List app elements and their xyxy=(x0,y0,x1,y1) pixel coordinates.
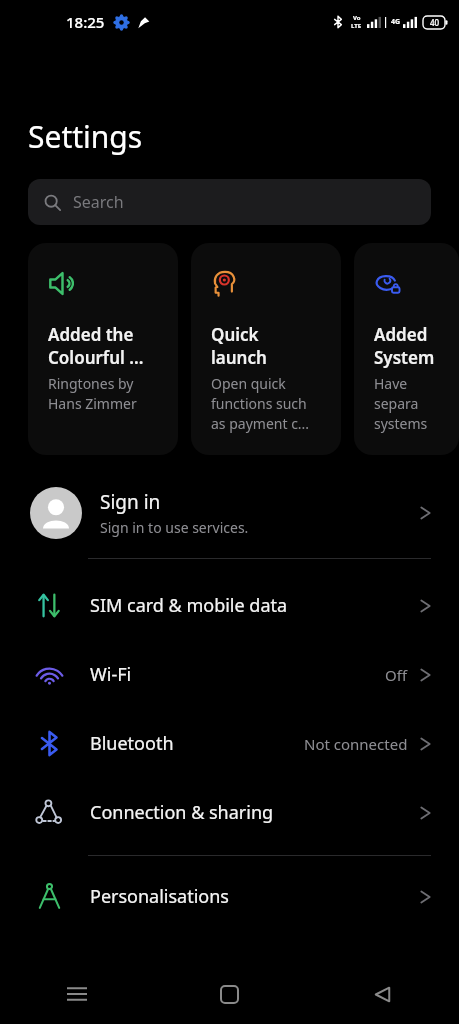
staticText: Personalisations xyxy=(90,884,420,909)
staticText: SIM card & mobile data xyxy=(90,593,420,618)
staticText: Search xyxy=(73,191,124,213)
staticText: Ringtones by Hans Zimmer xyxy=(48,374,137,413)
staticText: Vo xyxy=(353,14,361,22)
staticText: Sign in xyxy=(100,489,161,515)
button[interactable]: Personalisations xyxy=(0,862,459,931)
staticText: 4G xyxy=(391,17,401,27)
staticText: Wi-Fi xyxy=(90,662,385,687)
staticText: Have separa systems for work and pe xyxy=(374,374,449,433)
button[interactable]: Added the Colourful ... xyxy=(28,243,178,455)
staticText: Connection & sharing xyxy=(90,800,420,825)
staticText: Added System clo xyxy=(374,323,449,369)
button[interactable]: Quick launch xyxy=(191,243,341,455)
staticText: Added the Colourful ... xyxy=(48,323,144,369)
staticText: LTE xyxy=(351,22,362,30)
button[interactable]: Added System clo xyxy=(354,243,459,455)
staticText: Open quick functions such as payment c..… xyxy=(211,374,310,433)
staticText: Settings xyxy=(28,116,143,157)
button[interactable]: Back xyxy=(306,964,459,1024)
button[interactable]: Wi-Fi xyxy=(0,640,459,709)
button[interactable]: Connection & sharing xyxy=(0,778,459,847)
staticText: Not connected xyxy=(304,734,408,754)
staticText: 18:25 xyxy=(66,12,105,32)
staticText: Off xyxy=(385,665,408,685)
staticText: 40 xyxy=(430,17,440,28)
button[interactable]: Sign in xyxy=(0,482,459,544)
staticText: Bluetooth xyxy=(90,731,304,756)
staticText: Sign in to use services. xyxy=(100,518,249,537)
button[interactable]: SIM card & mobile data xyxy=(0,571,459,640)
button[interactable]: Recent apps xyxy=(0,964,153,1024)
button[interactable]: Home xyxy=(153,964,306,1024)
button[interactable]: Bluetooth xyxy=(0,709,459,778)
button[interactable]: Search xyxy=(28,179,431,225)
staticText: Quick launch xyxy=(211,323,267,369)
